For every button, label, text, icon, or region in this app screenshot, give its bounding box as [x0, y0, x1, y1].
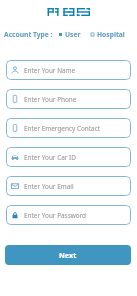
staticText: Enter Your Email: [24, 182, 74, 191]
staticText: Enter Emergency Contact: [24, 124, 101, 133]
button[interactable]: Car ID: [6, 147, 131, 167]
button[interactable]: Password: [6, 205, 131, 225]
button[interactable]: Emergency contact: [6, 118, 131, 138]
button[interactable]: Name: [6, 60, 131, 80]
staticText: Account Type :: [4, 30, 53, 39]
button[interactable]: Next: [5, 245, 131, 265]
button[interactable]: User: [59, 30, 81, 39]
button[interactable]: Email: [6, 176, 131, 196]
staticText: User: [65, 30, 81, 39]
staticText: Next: [59, 250, 77, 260]
button[interactable]: Phone: [6, 89, 131, 109]
staticText: Hospital: [97, 30, 125, 39]
staticText: Enter Your Car ID: [24, 153, 76, 162]
staticText: Enter Your Phone: [24, 95, 77, 104]
staticText: Enter Your Password: [24, 211, 87, 220]
button[interactable]: Hospital: [91, 30, 125, 39]
staticText: Enter Your Name: [24, 66, 76, 75]
